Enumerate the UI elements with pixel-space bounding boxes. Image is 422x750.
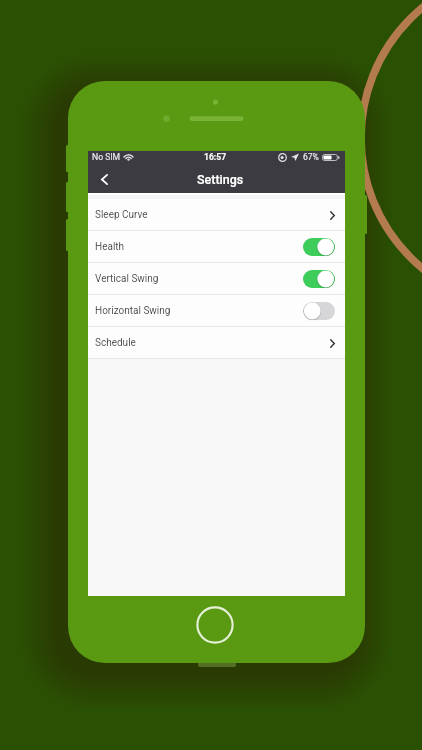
staticText: Horizontal Swing [95, 305, 171, 317]
staticText: 67% [303, 152, 319, 162]
button[interactable] [303, 238, 335, 256]
staticText: 16:57 [204, 152, 227, 162]
staticText: No SIM [92, 152, 121, 162]
staticText: Vertical Swing [95, 273, 159, 285]
staticText: Settings [197, 172, 244, 187]
button[interactable]: Home [196, 606, 234, 644]
button[interactable]: Back [88, 165, 120, 193]
button[interactable] [303, 302, 335, 320]
staticText: Sleep Curve [95, 209, 148, 221]
staticText: Schedule [95, 337, 136, 349]
button[interactable]: Schedule [88, 327, 345, 359]
button[interactable]: Vertical Swing [88, 263, 345, 295]
button[interactable]: Health [88, 231, 345, 263]
button[interactable]: Horizontal Swing [88, 295, 345, 327]
button[interactable] [303, 270, 335, 288]
button[interactable]: Sleep Curve [88, 199, 345, 231]
staticText: Health [95, 241, 125, 253]
